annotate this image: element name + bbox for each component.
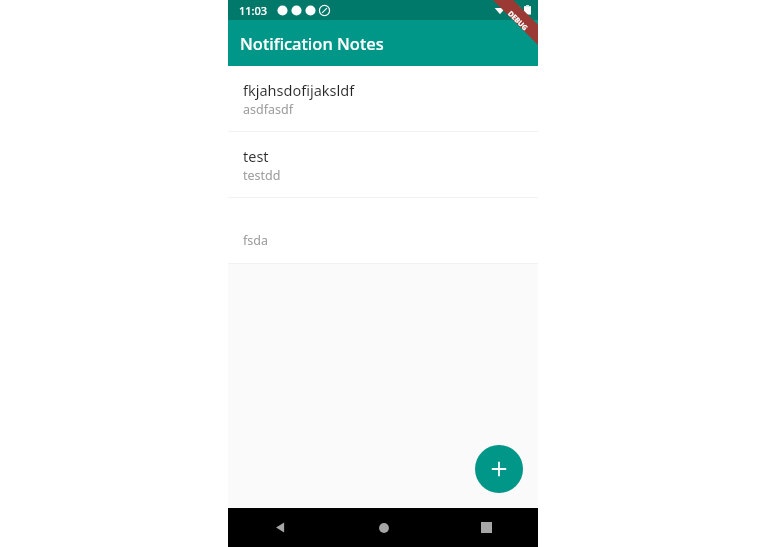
button[interactable]: fsda bbox=[228, 198, 538, 264]
staticText: testdd bbox=[243, 167, 281, 184]
staticText: fkjahsdofijaksldf bbox=[243, 80, 355, 100]
staticText: Notification Notes bbox=[240, 32, 384, 54]
button[interactable]: Add note bbox=[475, 445, 523, 493]
staticText: test bbox=[243, 146, 269, 166]
staticText: fsda bbox=[243, 232, 268, 249]
staticText: asdfasdf bbox=[243, 101, 293, 118]
button[interactable]: test bbox=[228, 132, 538, 198]
button[interactable]: Recent apps bbox=[435, 508, 538, 547]
staticText: DEBUG bbox=[505, 9, 530, 33]
staticText: 11:03 bbox=[239, 3, 268, 18]
button[interactable]: Back bbox=[228, 508, 332, 547]
button[interactable]: fkjahsdofijaksldf bbox=[228, 66, 538, 132]
button[interactable]: Home bbox=[332, 508, 435, 547]
